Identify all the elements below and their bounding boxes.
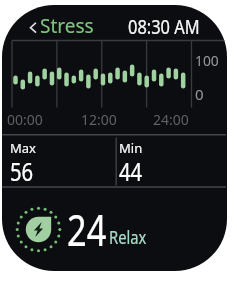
staticText: Stress (40, 13, 94, 39)
staticText: 24:00 (153, 110, 189, 129)
button[interactable] (20, 10, 105, 38)
staticText: 12:00 (81, 110, 117, 129)
staticText: 100 (195, 50, 219, 70)
staticText: Min (119, 139, 143, 157)
staticText: 44 (119, 153, 142, 188)
staticText: 56 (10, 153, 33, 188)
staticText: 08:30 AM (128, 14, 200, 40)
staticText: Max (10, 139, 36, 157)
staticText: 24 (67, 199, 107, 259)
button[interactable] (10, 201, 155, 257)
staticText: Relax (109, 225, 147, 250)
staticText: 0 (195, 84, 204, 104)
staticText: 00:00 (7, 110, 43, 129)
